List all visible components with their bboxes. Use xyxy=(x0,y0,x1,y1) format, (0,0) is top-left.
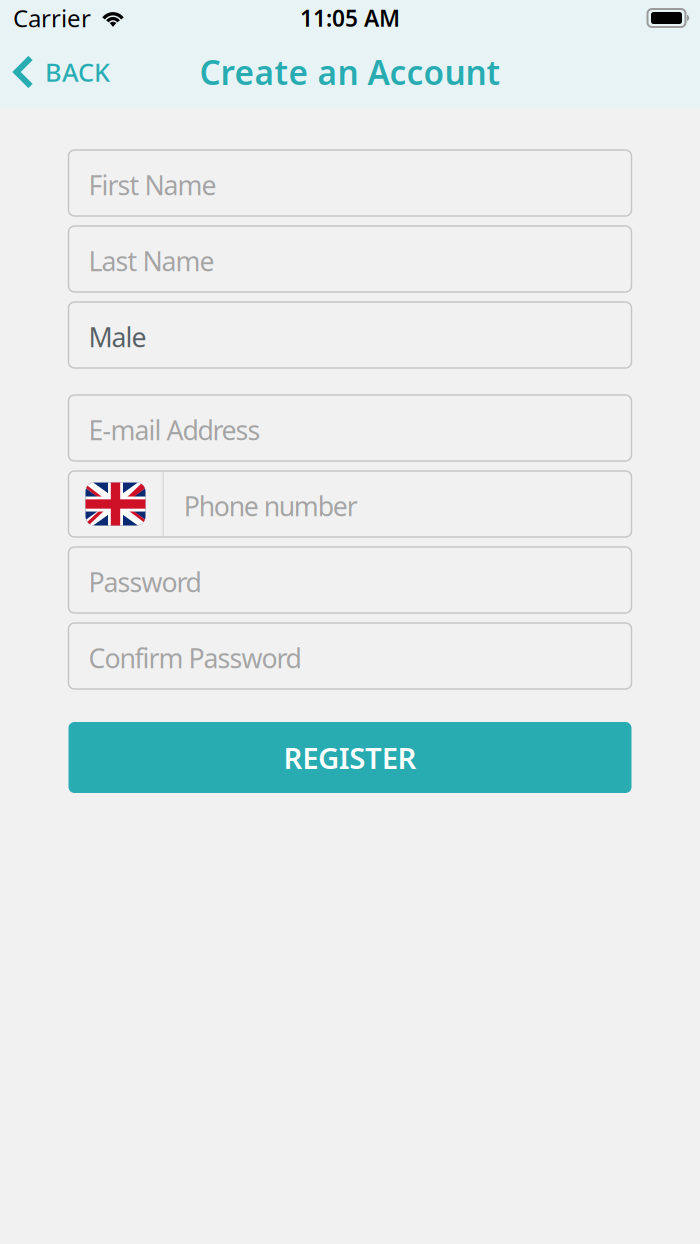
button[interactable]: Male xyxy=(68,302,631,368)
button[interactable]: Confirm Password xyxy=(68,623,631,689)
staticText: BACK xyxy=(45,55,110,89)
staticText: REGISTER xyxy=(283,738,416,777)
button[interactable]: BACK xyxy=(0,44,118,100)
button[interactable]: Password xyxy=(68,547,631,613)
staticText: Carrier xyxy=(13,2,91,34)
staticText: Create an Account xyxy=(199,50,500,94)
staticText: 11:05 AM xyxy=(300,3,400,33)
button[interactable]: E-mail Address xyxy=(68,395,631,461)
staticText: Password xyxy=(88,564,201,600)
button[interactable]: Last Name xyxy=(68,226,631,292)
button[interactable]: REGISTER xyxy=(68,722,631,793)
staticText: Phone number xyxy=(184,488,358,524)
button[interactable]: Select country code xyxy=(68,471,162,537)
staticText: E-mail Address xyxy=(88,412,260,448)
staticText: Last Name xyxy=(88,243,214,279)
staticText: Male xyxy=(88,319,146,355)
button[interactable]: First Name xyxy=(68,150,631,216)
staticText: Confirm Password xyxy=(88,640,301,676)
staticText: First Name xyxy=(88,167,216,203)
button[interactable]: Phone number xyxy=(164,471,631,537)
